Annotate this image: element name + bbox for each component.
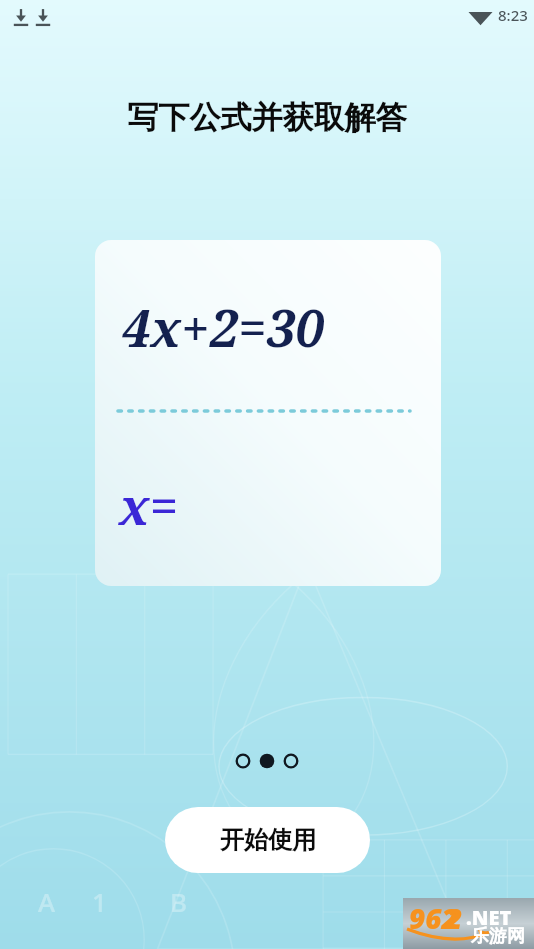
staticText: 962: [409, 899, 458, 937]
button[interactable]: Download: [12, 8, 30, 26]
button[interactable]: 开始使用: [165, 807, 370, 873]
staticText: 8:23: [498, 5, 528, 25]
button[interactable]: Download: [34, 8, 52, 26]
staticText: 2: [446, 899, 463, 937]
staticText: 开始使用: [220, 825, 316, 855]
staticText: 写下公式并获取解答: [0, 98, 534, 137]
button[interactable]: 4x+2=30: [95, 240, 441, 586]
staticText: A: [38, 884, 56, 919]
staticText: 1: [92, 884, 107, 919]
staticText: .NET: [466, 904, 512, 931]
staticText: 4x+2=30: [122, 292, 324, 361]
staticText: 乐游网: [471, 925, 525, 948]
staticText: x=: [119, 470, 179, 539]
staticText: B: [170, 884, 188, 919]
